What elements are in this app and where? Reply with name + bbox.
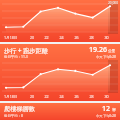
staticText: 28 — [84, 94, 99, 99]
staticText: 22 — [39, 35, 54, 40]
staticText: 26 — [69, 94, 84, 99]
staticText: 22 — [39, 94, 54, 99]
staticText: 19.26 — [89, 45, 107, 55]
staticText: 每日平均：11.3 — [4, 54, 28, 59]
staticText: 30 — [99, 94, 114, 99]
staticText: 30 — [99, 35, 114, 40]
staticText: 1月18日 — [4, 94, 25, 99]
staticText: 12 — [102, 104, 111, 114]
staticText: 今天 下午5:28 — [96, 114, 116, 118]
staticText: 今天 下午5:28 — [96, 55, 116, 59]
staticText: 28 — [84, 35, 99, 40]
staticText: 24 — [54, 94, 69, 99]
staticText: 24 — [54, 35, 69, 40]
staticText: 20 — [25, 35, 39, 40]
button[interactable]: 1月18日 — [0, 0, 120, 42]
staticText: 1月18日 — [4, 35, 25, 40]
button[interactable]: 步行 + 跑步距離 — [0, 44, 120, 101]
staticText: 層 — [112, 108, 116, 113]
staticText: 爬樓梯層數 — [4, 105, 35, 113]
button[interactable]: 爬樓梯層數 — [0, 103, 120, 120]
staticText: 步行 + 跑步距離 — [4, 46, 48, 54]
staticText: 每日平均：8 — [4, 113, 23, 118]
staticText: 公里 — [108, 49, 116, 54]
staticText: 20 — [25, 94, 39, 99]
staticText: 26 — [69, 35, 84, 40]
staticText: 20,000 — [108, 1, 118, 5]
